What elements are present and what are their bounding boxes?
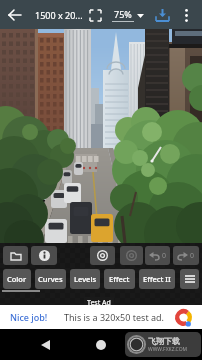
button[interactable]: Curves	[35, 269, 66, 289]
button[interactable]: Nice job!	[0, 305, 202, 329]
staticText: WWW.FXKZ.COM	[148, 346, 188, 353]
staticText: Effect	[109, 274, 130, 284]
staticText: Levels	[74, 274, 97, 284]
button[interactable]	[0, 0, 29, 29]
staticText: 75%	[114, 8, 132, 20]
button[interactable]: Color	[3, 269, 31, 289]
button[interactable]: 0	[173, 246, 199, 265]
button[interactable]: 75%	[112, 4, 144, 26]
staticText: 0	[162, 251, 167, 261]
button[interactable]	[180, 269, 199, 289]
button[interactable]	[137, 329, 177, 360]
button[interactable]: Effect II	[139, 269, 175, 289]
button[interactable]	[152, 5, 172, 25]
button[interactable]: Levels	[70, 269, 100, 289]
staticText: Nice job!	[10, 311, 48, 323]
button[interactable]	[81, 329, 121, 360]
button[interactable]	[3, 246, 28, 265]
button[interactable]	[120, 246, 143, 265]
staticText: 1500 x 20...	[35, 9, 83, 21]
button[interactable]: Effect	[104, 269, 135, 289]
staticText: Test Ad	[87, 298, 111, 308]
button[interactable]	[84, 4, 106, 26]
staticText: This is a 320x50 test ad.	[64, 311, 164, 323]
button[interactable]: 0	[145, 246, 170, 265]
staticText: Color	[7, 274, 27, 284]
button[interactable]	[90, 246, 115, 265]
staticText: 0	[190, 251, 195, 261]
staticText: 飞翔下载	[148, 336, 180, 346]
button[interactable]	[177, 6, 195, 24]
staticText: Curves	[38, 274, 63, 284]
button[interactable]	[25, 329, 65, 360]
staticText: Effect II	[143, 274, 171, 284]
button[interactable]	[31, 246, 57, 265]
